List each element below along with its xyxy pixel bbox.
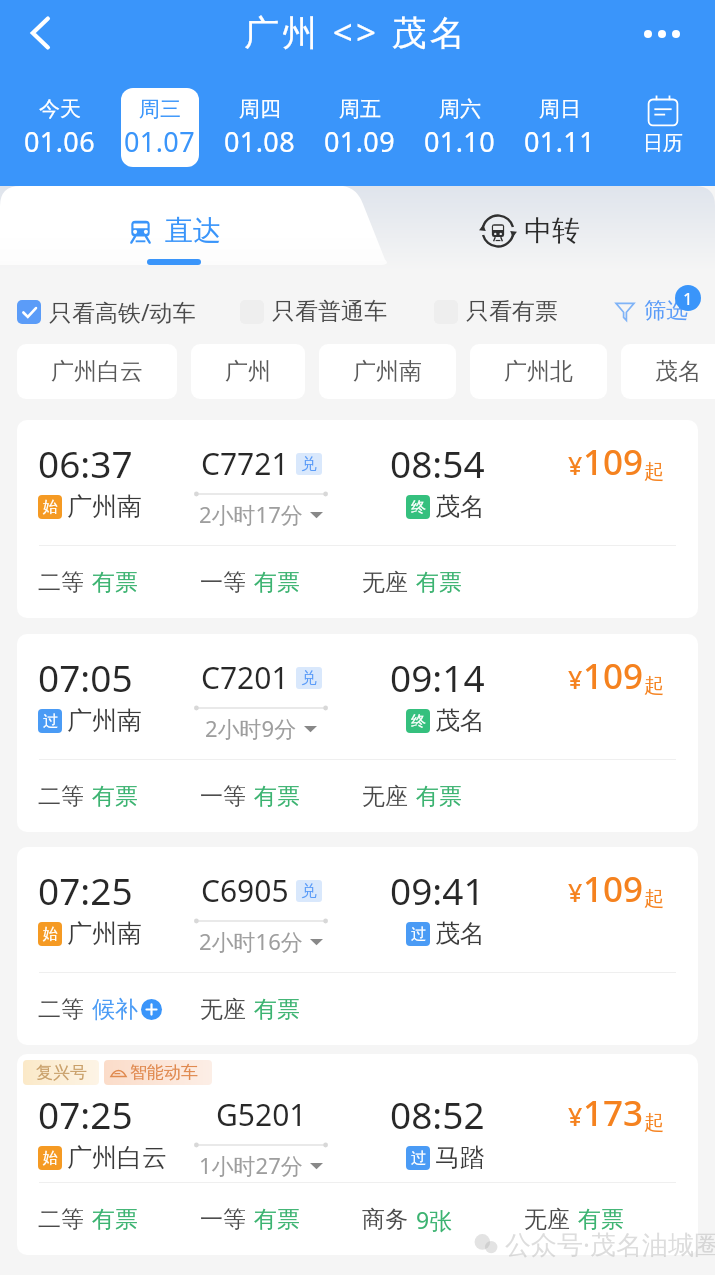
button[interactable]: 广州南 [319,344,456,399]
staticText: 公众号·茂名油城圈 [505,1226,715,1262]
staticText: 始 [43,925,58,944]
staticText: 广州 <> 茂名 [244,8,468,56]
staticText: 有票 [578,1205,624,1234]
staticText: 终 [411,712,426,731]
staticText: 01.07 [124,123,196,160]
button[interactable]: 周日 [521,88,599,167]
staticText: 无座 [200,995,246,1024]
staticText: 周五 [339,96,381,122]
staticText: 周日 [539,96,581,122]
staticText: 109 [583,865,644,913]
staticText: 1小时27分 [199,1150,303,1180]
staticText: 有票 [92,782,138,811]
staticText: 筛选 [644,297,688,325]
staticText: 有票 [416,782,462,811]
staticText: 起 [644,459,664,484]
staticText: 直达 [165,213,221,248]
button[interactable]: 广州北 [470,344,607,399]
staticText: 马踏 [435,1142,485,1173]
staticText: 二等 [38,1205,84,1234]
staticText: 9张 [416,1204,453,1235]
staticText: 起 [644,1110,664,1135]
staticText: 候补 [92,995,138,1024]
staticText: C6905 [201,870,289,911]
button[interactable]: 只看有票 [434,297,558,326]
staticText: 终 [411,498,426,517]
staticText: 起 [644,673,664,698]
button[interactable]: 筛选 [615,297,701,325]
staticText: G5201 [216,1094,307,1135]
staticText: 07:25 [38,865,133,915]
button[interactable]: 07:25 [17,847,698,1045]
staticText: 109 [583,438,644,486]
button[interactable]: 06:37 [17,420,698,618]
button[interactable]: 07:05 [17,634,698,832]
staticText: 广州南 [353,357,422,386]
staticText: 08:52 [390,1089,485,1139]
staticText: 一等 [200,782,246,811]
staticText: 有票 [92,1205,138,1234]
button[interactable]: 茂名 [621,344,715,399]
staticText: 广州白云 [67,1142,167,1173]
button[interactable]: 中转 [481,213,580,248]
button[interactable]: 广州 [191,344,305,399]
staticText: 无座 [524,1205,570,1234]
staticText: 2小时17分 [199,499,303,529]
button[interactable]: 周六 [421,88,499,167]
staticText: 广州南 [67,918,142,949]
staticText: 茂名 [435,491,485,522]
staticText: 始 [43,498,58,517]
staticText: ¥ [568,875,583,909]
staticText: ¥ [568,448,583,482]
staticText: 智能动车 [130,1062,198,1083]
staticText: 二等 [38,995,84,1024]
button[interactable]: 周四 [221,88,299,167]
staticText: 2小时9分 [205,713,297,743]
staticText: 01.11 [524,123,596,160]
staticText: 兑 [301,881,317,901]
button[interactable]: 广州白云 [17,344,177,399]
staticText: 二等 [38,568,84,597]
button[interactable]: 今天 [21,88,99,167]
staticText: 商务 [362,1205,408,1234]
staticText: 无座 [362,782,408,811]
staticText: 茂名 [655,357,701,386]
staticText: 06:37 [38,438,133,488]
button[interactable]: More [638,10,686,58]
staticText: 过 [43,712,58,731]
staticText: 兑 [301,454,317,474]
staticText: 广州白云 [51,357,143,386]
staticText: 周四 [239,96,281,122]
staticText: 起 [644,886,664,911]
button[interactable]: 只看高铁/动车 [17,296,196,327]
staticText: 广州 [225,357,271,386]
staticText: 有票 [416,568,462,597]
staticText: 兑 [301,668,317,688]
button[interactable]: 直达 [127,213,221,248]
button[interactable]: 周三 [121,88,199,167]
staticText: 日历 [643,131,683,156]
staticText: 07:25 [38,1089,133,1139]
staticText: 有票 [254,568,300,597]
button[interactable]: 日历 [610,72,715,182]
staticText: 广州南 [67,491,142,522]
staticText: ¥ [568,662,583,696]
button[interactable]: 只看普通车 [240,297,387,326]
staticText: 只看有票 [466,297,558,326]
staticText: 08:54 [390,438,485,488]
button[interactable]: 复兴号 [17,1054,698,1255]
staticText: 始 [43,1149,58,1168]
staticText: C7201 [201,657,289,698]
staticText: ¥ [568,1099,583,1133]
staticText: 有票 [254,995,300,1024]
staticText: 今天 [39,96,81,122]
staticText: 周三 [139,96,181,122]
staticText: 过 [411,1149,426,1168]
staticText: 周六 [439,96,481,122]
staticText: 一等 [200,1205,246,1234]
staticText: 2小时16分 [199,926,303,956]
staticText: 只看高铁/动车 [49,296,196,327]
staticText: 173 [583,1089,644,1137]
button[interactable]: 周五 [321,88,399,167]
button[interactable]: Back [16,9,64,57]
